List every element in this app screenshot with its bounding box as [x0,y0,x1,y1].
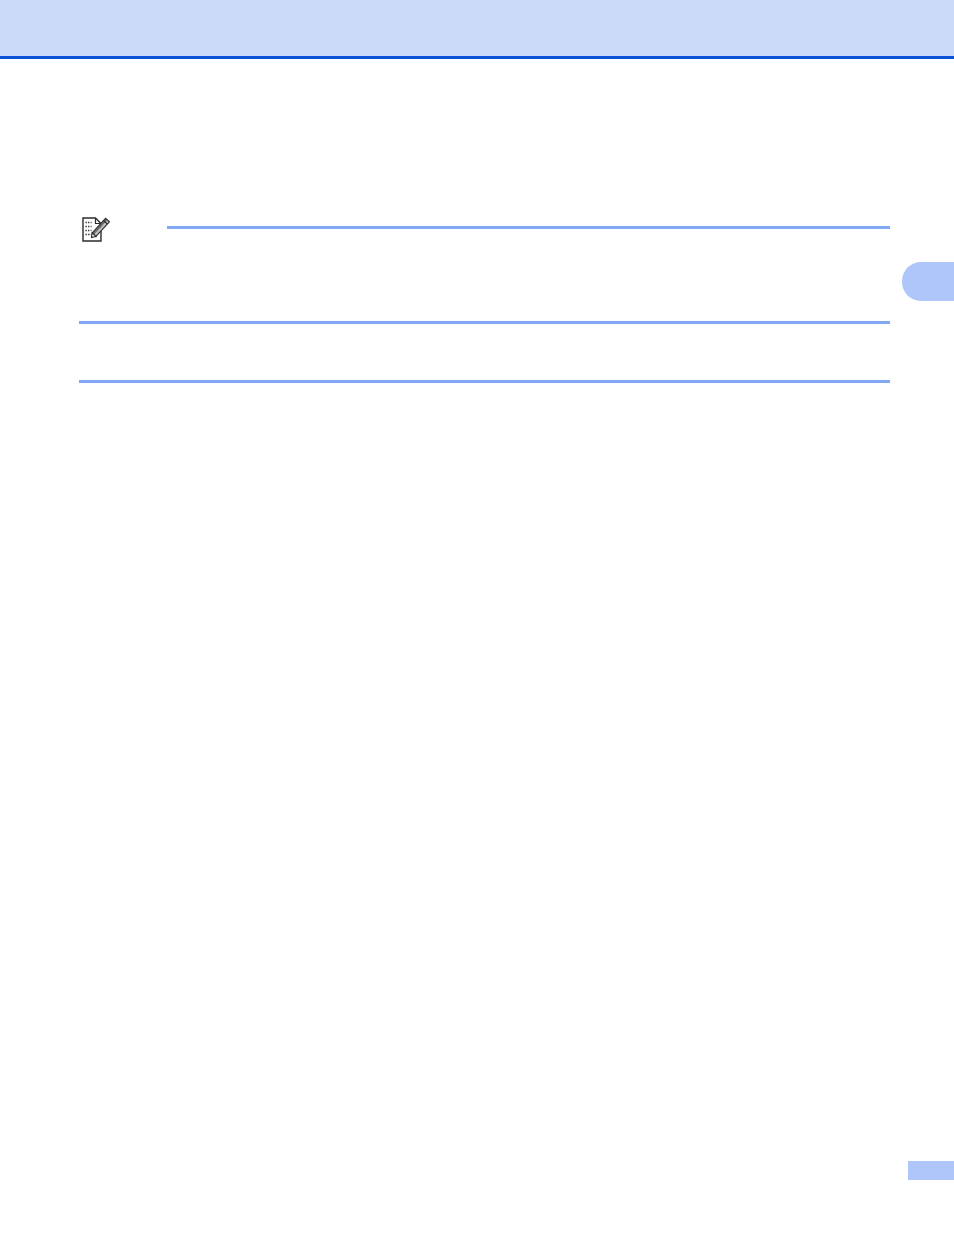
button[interactable]: Chapter tab [902,262,954,301]
button[interactable]: Note [82,216,109,243]
